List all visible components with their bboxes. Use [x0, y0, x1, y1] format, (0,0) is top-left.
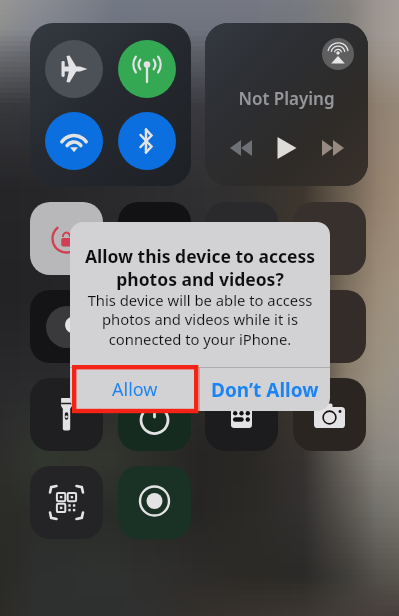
button[interactable]: Don’t Allow — [200, 368, 330, 411]
button[interactable]: Allow — [70, 368, 199, 411]
button[interactable]: Rotation lock — [30, 202, 103, 275]
button[interactable]: Low power mode — [118, 290, 191, 363]
staticText: Don’t Allow — [211, 377, 319, 403]
button[interactable]: Next — [313, 128, 353, 168]
button[interactable]: Timer — [118, 378, 191, 451]
button[interactable]: Focus — [30, 290, 103, 363]
button[interactable]: Hearing — [293, 202, 366, 275]
button[interactable]: Text size — [293, 290, 366, 363]
button[interactable]: Cellular data — [118, 40, 176, 98]
button[interactable]: Focus — [205, 202, 278, 275]
button[interactable]: Bluetooth — [118, 112, 176, 170]
button[interactable]: Calculator — [205, 378, 278, 451]
staticText: Allow this device to access photos and v… — [70, 244, 330, 291]
button[interactable]: Dark mode — [205, 290, 278, 363]
button[interactable]: Camera — [293, 378, 366, 451]
button[interactable]: AirPlay — [322, 38, 354, 70]
button[interactable]: Play — [267, 128, 307, 168]
button[interactable]: Wi-Fi — [45, 112, 103, 170]
button[interactable]: Airplane mode — [45, 40, 103, 98]
staticText: Allow — [112, 377, 158, 402]
staticText: This device will be able to access photo… — [70, 290, 330, 350]
staticText: Not Playing — [205, 87, 368, 110]
button[interactable]: Previous — [221, 128, 261, 168]
button[interactable]: Screen mirroring — [118, 202, 191, 275]
button[interactable]: Flashlight — [30, 378, 103, 451]
button[interactable]: Code scanner — [30, 466, 103, 539]
button[interactable]: Screen record — [118, 466, 191, 539]
